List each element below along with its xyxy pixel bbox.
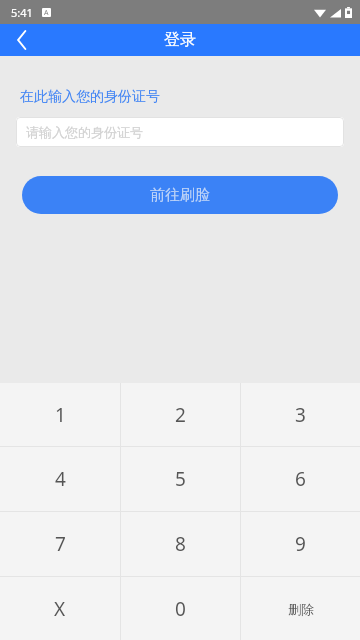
button[interactable]: 8 bbox=[121, 512, 240, 576]
staticText: A bbox=[44, 8, 49, 17]
staticText: 6 bbox=[295, 466, 306, 492]
staticText: 5 bbox=[175, 466, 186, 492]
staticText: 9 bbox=[295, 531, 306, 557]
button[interactable]: 9 bbox=[241, 512, 360, 576]
staticText: 删除 bbox=[288, 601, 314, 617]
staticText: 2 bbox=[175, 402, 186, 428]
button[interactable]: Back bbox=[0, 24, 44, 56]
button[interactable]: X bbox=[0, 577, 120, 640]
staticText: 1 bbox=[55, 402, 66, 428]
staticText: 4 bbox=[55, 466, 66, 492]
button[interactable]: 1 bbox=[0, 383, 120, 446]
button[interactable]: 删除 bbox=[241, 577, 360, 640]
staticText: 前往刷脸 bbox=[150, 186, 210, 205]
button[interactable]: 5 bbox=[121, 447, 240, 511]
staticText: 登录 bbox=[164, 30, 196, 50]
button[interactable]: 前往刷脸 bbox=[22, 176, 338, 214]
staticText: 0 bbox=[175, 596, 186, 622]
staticText: 请输入您的身份证号 bbox=[26, 124, 143, 140]
staticText: 7 bbox=[55, 531, 66, 557]
button[interactable]: 请输入您的身份证号 bbox=[16, 117, 344, 147]
button[interactable]: 7 bbox=[0, 512, 120, 576]
staticText: 5:41 bbox=[11, 5, 33, 20]
button[interactable]: 6 bbox=[241, 447, 360, 511]
staticText: 在此输入您的身份证号 bbox=[20, 88, 160, 106]
staticText: X bbox=[54, 596, 66, 622]
staticText: 3 bbox=[295, 402, 306, 428]
staticText: 8 bbox=[175, 531, 186, 557]
button[interactable]: 2 bbox=[121, 383, 240, 446]
button[interactable]: 4 bbox=[0, 447, 120, 511]
button[interactable]: 3 bbox=[241, 383, 360, 446]
button[interactable]: 0 bbox=[121, 577, 240, 640]
